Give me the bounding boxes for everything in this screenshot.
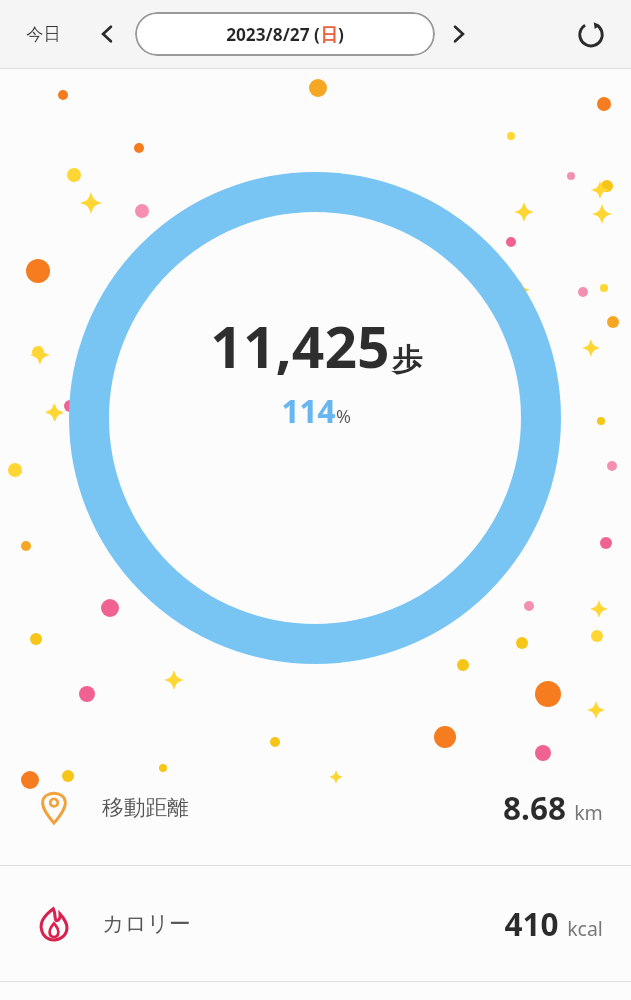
staticText: 2023/8/27 ( bbox=[226, 23, 320, 46]
staticText: ) bbox=[338, 23, 344, 46]
staticText: 日 bbox=[320, 24, 338, 46]
staticText: 8.68 bbox=[503, 786, 566, 829]
staticText: 移動距離 bbox=[102, 794, 189, 821]
staticText: kcal bbox=[567, 915, 603, 942]
staticText: 114 bbox=[281, 389, 336, 432]
button[interactable]: カロリー bbox=[0, 866, 631, 981]
staticText: 410 bbox=[504, 902, 559, 945]
button[interactable]: 今日 bbox=[18, 17, 69, 51]
button[interactable]: Previous day bbox=[85, 12, 129, 56]
button[interactable]: Next day bbox=[437, 12, 481, 56]
staticText: km bbox=[574, 799, 603, 826]
staticText: 歩 bbox=[392, 341, 422, 379]
button[interactable]: Refresh bbox=[567, 10, 615, 58]
staticText: % bbox=[336, 404, 351, 429]
button[interactable]: 移動距離 bbox=[0, 750, 631, 865]
staticText: 11,425 bbox=[210, 307, 390, 385]
staticText: カロリー bbox=[102, 910, 191, 937]
staticText: 今日 bbox=[26, 23, 61, 45]
button[interactable]: 2023/8/27 ( bbox=[135, 12, 435, 56]
